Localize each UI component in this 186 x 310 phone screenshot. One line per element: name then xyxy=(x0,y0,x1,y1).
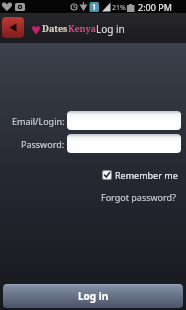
staticText: Remember me xyxy=(115,169,178,180)
staticText: Password: xyxy=(21,138,65,150)
staticText: Kenya xyxy=(68,22,97,34)
staticText: Forgot password? xyxy=(101,191,177,203)
button[interactable] xyxy=(2,17,24,38)
button[interactable]: Remember me xyxy=(0,169,178,180)
staticText: Dates xyxy=(42,22,68,34)
staticText: Email/Login: xyxy=(12,115,65,127)
staticText: 2:00 PM xyxy=(138,1,172,13)
button[interactable]: Log in xyxy=(3,284,183,308)
button[interactable] xyxy=(67,134,181,153)
button[interactable]: Forgot password? xyxy=(0,191,177,203)
staticText: Log in xyxy=(96,22,125,36)
staticText: Log in xyxy=(78,289,109,303)
button[interactable] xyxy=(67,111,181,130)
staticText: 21% xyxy=(112,3,126,13)
